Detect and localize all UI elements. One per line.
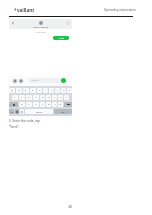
- button[interactable]: Q: [9, 88, 15, 93]
- button[interactable]: English: [25, 109, 53, 114]
- button[interactable]: T: [37, 88, 42, 93]
- staticText: H: [48, 96, 50, 99]
- button[interactable]: Z: [19, 102, 25, 107]
- staticText: G: [42, 96, 44, 99]
- staticText: Hello: [59, 37, 64, 40]
- staticText: P: [69, 89, 71, 92]
- staticText: “Send”.: [9, 125, 20, 129]
- button[interactable]: X: [26, 102, 32, 107]
- button[interactable]: B: [46, 102, 51, 107]
- button[interactable]: A: [12, 95, 18, 100]
- button[interactable]: L: [64, 95, 69, 100]
- button[interactable]: Attach file: [13, 79, 17, 83]
- button[interactable]: Back: [11, 21, 15, 25]
- button[interactable]: I: [55, 88, 60, 93]
- staticText: 48: [68, 205, 72, 209]
- staticText: K: [60, 96, 62, 99]
- staticText: 5. Enter the code, tap: [9, 119, 40, 123]
- staticText: Q: [11, 89, 13, 92]
- button[interactable]: Shift: [9, 102, 18, 107]
- staticText: O: [63, 89, 65, 92]
- staticText: U: [51, 89, 53, 92]
- staticText: A: [14, 96, 16, 99]
- button[interactable]: Voice input: [20, 109, 24, 114]
- staticText: next: [61, 111, 65, 113]
- staticText: English: [36, 111, 43, 113]
- staticText: vaillant: [17, 7, 35, 13]
- staticText: M: [59, 103, 62, 106]
- button[interactable]: U: [49, 88, 54, 93]
- staticText: E: [25, 89, 27, 92]
- button[interactable]: C: [33, 102, 39, 107]
- staticText: B: [48, 103, 50, 106]
- button[interactable]: H: [46, 95, 51, 100]
- button[interactable]: Camera: [19, 79, 23, 83]
- button[interactable]: D: [26, 95, 32, 100]
- staticText: J: [54, 96, 55, 99]
- staticText: Z: [21, 103, 23, 106]
- button[interactable]: V: [40, 102, 45, 107]
- staticText: F: [35, 96, 37, 99]
- button[interactable]: F: [33, 95, 39, 100]
- staticText: C: [35, 103, 37, 106]
- button[interactable]: K: [58, 95, 63, 100]
- button[interactable]: Enter: [54, 109, 72, 114]
- button[interactable]: P: [67, 88, 72, 93]
- button[interactable]: G: [40, 95, 45, 100]
- staticText: Y: [45, 89, 47, 92]
- button[interactable]: Message: [29, 78, 64, 83]
- button[interactable]: M: [58, 102, 63, 107]
- staticText: T: [39, 89, 41, 92]
- button[interactable]: Backspace: [64, 102, 72, 107]
- button[interactable]: S: [19, 95, 25, 100]
- staticText: X: [28, 103, 30, 106]
- button[interactable]: O: [61, 88, 66, 93]
- staticText: S: [21, 96, 23, 99]
- staticText: N: [54, 103, 56, 106]
- staticText: V: [42, 103, 44, 106]
- staticText: D: [28, 96, 30, 99]
- button[interactable]: Y: [43, 88, 48, 93]
- button[interactable]: More options: [66, 21, 70, 25]
- button[interactable]: Hello: [53, 36, 69, 40]
- button[interactable]: W: [16, 88, 22, 93]
- staticText: L: [66, 96, 68, 99]
- staticText: Operating instructions: [104, 8, 136, 12]
- staticText: 12 May 2021: [35, 31, 47, 34]
- button[interactable]: J: [52, 95, 57, 100]
- button[interactable]: R: [30, 88, 36, 93]
- button[interactable]: Send: [61, 78, 66, 83]
- staticText: R: [32, 89, 34, 92]
- button[interactable]: E: [23, 88, 29, 93]
- button[interactable]: N: [52, 102, 57, 107]
- button[interactable]: Symbols: [9, 109, 14, 114]
- staticText: Message: [31, 79, 39, 82]
- staticText: I: [57, 89, 58, 92]
- button[interactable]: Emoji: [15, 109, 19, 114]
- staticText: Vaillant Service: [33, 26, 49, 29]
- staticText: W: [18, 89, 21, 92]
- staticText: ?123: [10, 111, 14, 113]
